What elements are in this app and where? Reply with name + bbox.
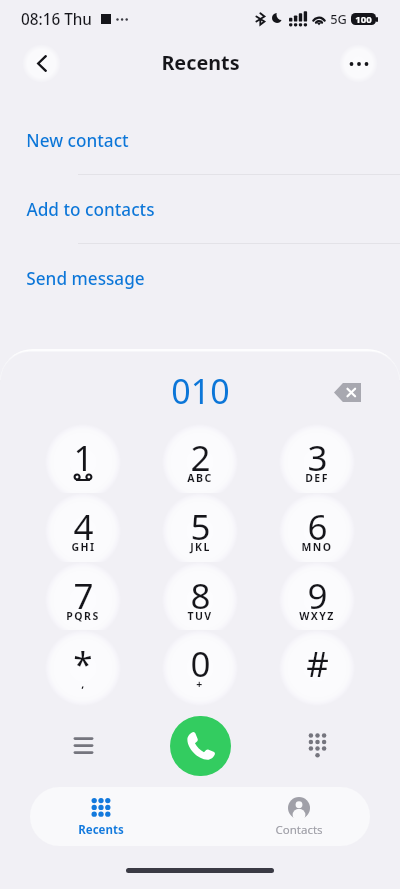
staticText: 100 [355,13,372,25]
staticText: ABC [187,471,213,485]
button[interactable]: 1 [45,424,121,500]
button[interactable]: Call [170,716,231,776]
staticText: * [73,640,93,688]
staticText: 5G [330,10,347,27]
button[interactable]: 7 [45,562,121,638]
staticText: Recents [78,822,124,838]
staticText: 9 [307,572,328,620]
staticText: # [306,640,329,688]
staticText: 4 [73,503,94,551]
button[interactable]: # [279,630,355,706]
staticText: WXYZ [299,609,335,623]
button[interactable]: More options [339,44,378,83]
button[interactable]: 4 [45,493,121,569]
staticText: 08:16 Thu [21,9,92,30]
button[interactable]: 5 [162,493,238,569]
button[interactable]: 6 [279,493,355,569]
staticText: 8 [190,572,211,620]
button[interactable]: 8 [162,562,238,638]
staticText: JKL [190,540,211,554]
staticText: 7 [73,572,94,620]
staticText: PQRS [66,609,100,623]
button[interactable]: Recents [51,787,151,846]
staticText: 5 [190,503,211,551]
button[interactable]: New contact [0,106,400,174]
staticText: Recents [161,49,240,76]
staticText: New contact [26,129,129,152]
staticText: MNO [301,540,333,554]
staticText: Add to contacts [26,198,155,221]
button[interactable]: Back [22,44,61,83]
button[interactable]: Send message [0,244,400,312]
staticText: 010 [171,368,230,414]
staticText: 2 [190,434,211,482]
staticText: 1 [73,434,94,482]
staticText: 0 [190,640,211,688]
staticText: 3 [307,434,328,482]
button[interactable]: * [45,630,121,706]
button[interactable]: 0 [162,630,238,706]
staticText: DEF [305,471,329,485]
button[interactable]: Add to contacts [0,175,400,243]
button[interactable]: Hide keypad [295,722,339,766]
staticText: TUV [187,609,213,623]
staticText: GHI [71,540,96,554]
staticText: + [196,677,204,691]
staticText: Send message [26,267,145,290]
button[interactable]: 2 [162,424,238,500]
button[interactable]: 3 [279,424,355,500]
button[interactable]: Backspace [325,370,369,414]
staticText: Contacts [275,822,323,838]
button[interactable]: 9 [279,562,355,638]
staticText: , [81,677,86,691]
button[interactable]: Contacts [249,787,349,846]
button[interactable]: Call log options [61,723,105,767]
staticText: 6 [307,503,328,551]
